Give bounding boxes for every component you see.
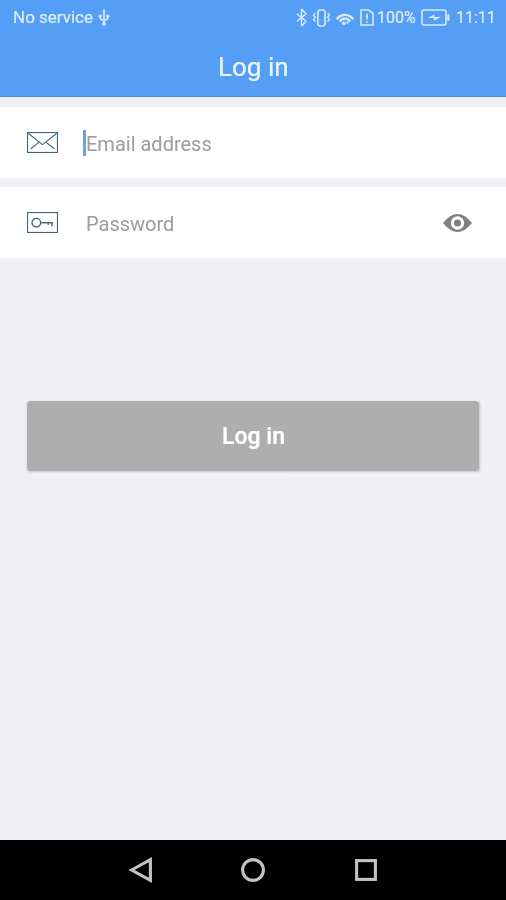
staticText: 100% [377, 8, 416, 27]
button[interactable]: Back [111, 840, 171, 900]
staticText: No service [13, 7, 94, 27]
staticText: Log in [218, 52, 289, 82]
button[interactable]: Show password [435, 201, 479, 245]
button[interactable]: Email address [0, 107, 506, 178]
staticText: Password [86, 212, 175, 235]
staticText: Log in [222, 423, 285, 450]
button[interactable]: Log in [27, 401, 479, 471]
button[interactable]: Password [0, 187, 506, 258]
button[interactable]: Home [223, 840, 283, 900]
staticText: 11:11 [456, 8, 496, 27]
staticText: Email address [86, 132, 212, 155]
button[interactable]: Recent apps [336, 840, 396, 900]
